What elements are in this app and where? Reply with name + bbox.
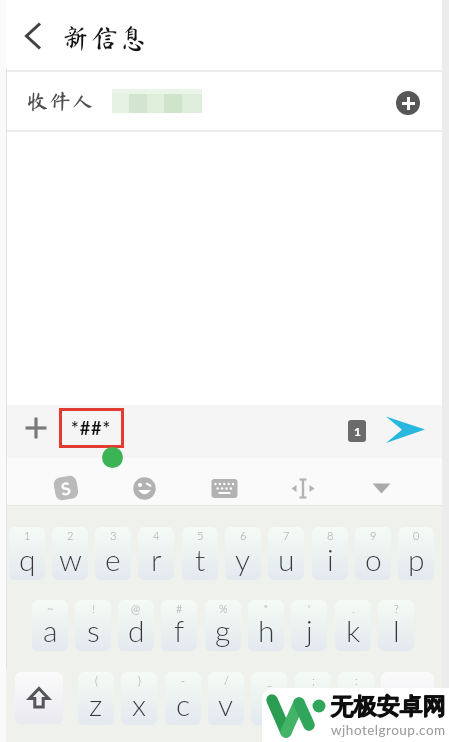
staticText: ~ xyxy=(47,602,54,615)
staticText: y xyxy=(235,541,251,577)
staticText: . xyxy=(352,602,355,615)
button[interactable]: ! xyxy=(75,600,111,651)
staticText: 新信息 xyxy=(62,24,149,51)
staticText: d xyxy=(128,612,145,648)
button[interactable]: 7 xyxy=(268,527,304,580)
staticText: 7 xyxy=(283,529,290,542)
button[interactable]: ' xyxy=(291,600,327,651)
staticText: 2 xyxy=(67,529,74,542)
staticText: a xyxy=(43,612,58,648)
button[interactable]: 5 xyxy=(182,527,218,580)
button[interactable]: @ xyxy=(118,600,154,651)
staticText: @ xyxy=(131,602,141,615)
staticText: o xyxy=(365,541,382,577)
staticText: ' xyxy=(308,602,311,615)
button[interactable]: - xyxy=(165,672,201,725)
staticText: q xyxy=(19,541,36,577)
staticText: 收件人 xyxy=(27,91,95,112)
staticText: r xyxy=(151,541,162,577)
staticText: f xyxy=(174,612,185,648)
staticText: k xyxy=(346,612,361,648)
staticText: *##* xyxy=(71,417,112,439)
button[interactable] xyxy=(371,482,392,495)
staticText: 4 xyxy=(153,529,160,542)
staticText: s xyxy=(87,612,100,648)
button[interactable]: S xyxy=(50,472,82,504)
button[interactable]: ~ xyxy=(32,600,68,651)
staticText: c xyxy=(176,686,191,722)
staticText: 3 xyxy=(110,529,117,542)
staticText: % xyxy=(219,602,228,615)
button[interactable]: 6 xyxy=(225,527,261,580)
button[interactable]: 1 xyxy=(9,527,45,580)
staticText: ? xyxy=(394,602,399,615)
staticText: g xyxy=(215,612,231,648)
button[interactable]: 3 xyxy=(95,527,131,580)
staticText: ( xyxy=(95,674,98,687)
staticText: z xyxy=(89,686,103,722)
staticText: u xyxy=(278,541,295,577)
staticText: / xyxy=(224,674,229,687)
button[interactable] xyxy=(290,477,316,500)
button[interactable] xyxy=(22,414,50,442)
staticText: m xyxy=(344,686,369,722)
staticText: 1 xyxy=(354,424,361,438)
staticText: 无极安卓网 xyxy=(330,693,445,722)
button[interactable] xyxy=(15,672,63,724)
button[interactable]: *##* xyxy=(59,408,124,448)
staticText: 5 xyxy=(197,529,204,542)
staticText: 8 xyxy=(327,529,334,542)
staticText: - xyxy=(181,674,186,687)
button[interactable] xyxy=(396,91,420,115)
staticText: " xyxy=(264,602,268,615)
button[interactable] xyxy=(132,476,157,501)
staticText: S xyxy=(59,477,73,499)
button[interactable]: 8 xyxy=(312,527,348,580)
button[interactable]: % xyxy=(205,600,241,651)
staticText: x xyxy=(132,686,147,722)
staticText: 无极安卓网 xyxy=(330,692,445,721)
staticText: 1 xyxy=(24,529,31,542)
staticText: ) xyxy=(138,674,141,687)
staticText: l xyxy=(393,612,400,648)
staticText: e xyxy=(105,541,121,577)
staticText: b xyxy=(261,686,278,722)
button[interactable]: " xyxy=(248,600,284,651)
staticText: n xyxy=(305,686,322,722)
button[interactable]: # xyxy=(161,600,197,651)
button[interactable]: 0 xyxy=(398,527,434,580)
staticText: wjhotelgroup.com xyxy=(331,722,446,738)
button[interactable]: _ xyxy=(251,672,287,725)
button[interactable]: . xyxy=(335,600,371,651)
button[interactable] xyxy=(14,22,50,52)
button[interactable]: 4 xyxy=(138,527,174,580)
button[interactable]: ( xyxy=(78,672,114,725)
button[interactable] xyxy=(382,412,430,448)
button[interactable]: ) xyxy=(121,672,157,725)
staticText: # xyxy=(176,602,183,615)
staticText: : xyxy=(355,674,358,687)
staticText: i xyxy=(327,541,334,577)
staticText: _ xyxy=(267,674,272,687)
button[interactable]: / xyxy=(208,672,244,725)
button[interactable]: ; xyxy=(295,672,331,725)
staticText: 9 xyxy=(370,529,377,542)
button[interactable]: 9 xyxy=(355,527,391,580)
button[interactable]: ? xyxy=(378,600,414,651)
staticText: t xyxy=(195,541,206,577)
button[interactable]: 2 xyxy=(52,527,88,580)
staticText: w xyxy=(59,541,82,577)
button[interactable] xyxy=(211,478,238,499)
staticText: v xyxy=(218,686,234,722)
staticText: ; xyxy=(312,674,315,687)
staticText: ! xyxy=(92,602,95,615)
staticText: j xyxy=(306,612,313,648)
staticText: 无极安卓网 xyxy=(331,692,446,721)
staticText: p xyxy=(408,541,425,577)
staticText: 6 xyxy=(240,529,247,542)
staticText: h xyxy=(258,612,275,648)
staticText: 0 xyxy=(413,529,420,542)
button[interactable]: : xyxy=(338,672,374,725)
button[interactable]: 1 xyxy=(348,420,366,442)
